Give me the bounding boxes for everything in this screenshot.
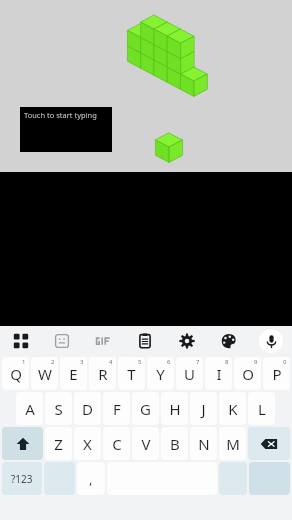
- staticText: U: [184, 364, 195, 384]
- button[interactable]: Y: [147, 357, 174, 390]
- button[interactable]: O: [234, 357, 261, 390]
- staticText: Touch to start typing: [24, 110, 97, 120]
- button[interactable]: Shift: [2, 427, 43, 460]
- staticText: J: [201, 399, 206, 419]
- staticText: B: [170, 434, 180, 454]
- staticText: X: [83, 434, 92, 454]
- staticText: I: [216, 364, 222, 384]
- button[interactable]: X: [74, 427, 101, 460]
- staticText: V: [141, 434, 151, 454]
- button[interactable]: S: [45, 392, 72, 425]
- staticText: 3: [80, 358, 84, 366]
- staticText: L: [258, 399, 266, 419]
- button[interactable]: F: [103, 392, 130, 425]
- staticText: 2: [51, 358, 55, 366]
- staticText: Q: [10, 364, 22, 384]
- staticText: 4: [109, 358, 113, 366]
- staticText: ,: [89, 470, 93, 488]
- staticText: F: [113, 399, 121, 419]
- staticText: 8: [225, 358, 229, 366]
- staticText: 7: [196, 358, 200, 366]
- button[interactable]: R: [89, 357, 116, 390]
- staticText: Z: [54, 434, 63, 454]
- button[interactable]: K: [219, 392, 246, 425]
- button[interactable]: D: [74, 392, 101, 425]
- staticText: 9: [254, 358, 258, 366]
- button[interactable]: W: [31, 357, 58, 390]
- staticText: T: [127, 364, 136, 384]
- staticText: E: [69, 364, 78, 384]
- staticText: 1: [22, 358, 26, 366]
- button[interactable]: GIF: [82, 326, 124, 356]
- button[interactable]: Q: [2, 357, 29, 390]
- button[interactable]: ,: [77, 462, 105, 495]
- staticText: Y: [156, 364, 165, 384]
- button[interactable]: Backspace: [248, 427, 290, 460]
- button[interactable]: Touch to start typing: [20, 107, 112, 152]
- button[interactable]: A: [16, 392, 43, 425]
- staticText: 5: [138, 358, 142, 366]
- button[interactable]: Clipboard: [124, 326, 166, 356]
- staticText: ?123: [11, 472, 33, 486]
- staticText: P: [272, 364, 282, 384]
- button[interactable]: J: [190, 392, 217, 425]
- staticText: D: [82, 399, 93, 419]
- button[interactable]: G: [132, 392, 159, 425]
- staticText: K: [228, 399, 238, 419]
- button[interactable]: P: [263, 357, 290, 390]
- staticText: G: [140, 399, 151, 419]
- button[interactable]: H: [161, 392, 188, 425]
- staticText: C: [112, 434, 122, 454]
- button[interactable]: Settings: [166, 326, 208, 356]
- button[interactable]: B: [161, 427, 188, 460]
- button[interactable]: ?123: [2, 462, 42, 495]
- button[interactable]: Themes: [208, 326, 250, 356]
- staticText: S: [54, 399, 63, 419]
- button[interactable]: Voice input: [259, 329, 283, 353]
- button[interactable]: I: [205, 357, 232, 390]
- staticText: R: [98, 364, 108, 384]
- staticText: N: [198, 434, 210, 454]
- staticText: 6: [167, 358, 171, 366]
- staticText: W: [38, 364, 52, 384]
- staticText: A: [25, 399, 35, 419]
- staticText: 0: [283, 358, 287, 366]
- button[interactable]: Stickers: [41, 326, 82, 356]
- button[interactable]: E: [60, 357, 87, 390]
- button[interactable]: C: [103, 427, 130, 460]
- staticText: M: [226, 434, 240, 454]
- staticText: H: [169, 399, 181, 419]
- staticText: O: [242, 364, 254, 384]
- button[interactable]: Z: [45, 427, 72, 460]
- button[interactable]: T: [118, 357, 145, 390]
- button[interactable]: V: [132, 427, 159, 460]
- button[interactable]: U: [176, 357, 203, 390]
- button[interactable]: L: [248, 392, 275, 425]
- button[interactable]: Apps: [0, 326, 41, 356]
- button[interactable]: M: [219, 427, 246, 460]
- button[interactable]: N: [190, 427, 217, 460]
